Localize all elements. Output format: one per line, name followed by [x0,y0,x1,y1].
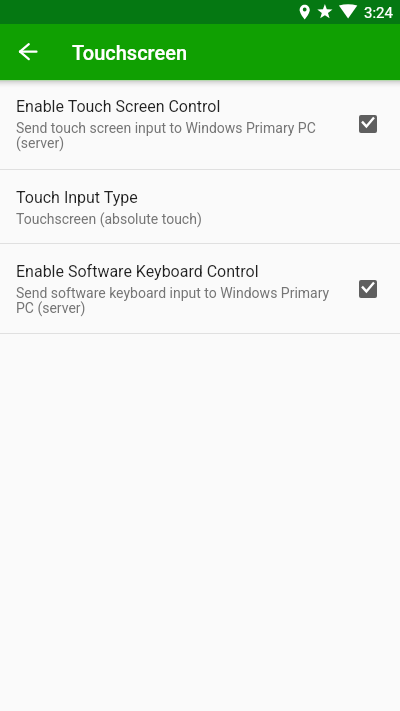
staticText: Touchscreen (absolute touch) [16,211,202,227]
button[interactable]: Navigate up [4,28,52,76]
staticText: Enable Software Keyboard Control [16,262,259,281]
staticText: Touch Input Type [16,188,138,207]
button[interactable]: Enable Software Keyboard Control [0,245,400,334]
staticText: Touchscreen [72,41,188,64]
button[interactable]: Toggle Enable Touch Screen Control [348,104,388,144]
staticText: Send touch screen input to Windows Prima… [16,120,346,151]
staticText: 3:24 [364,4,393,22]
button[interactable]: Toggle Enable Software Keyboard Control [348,269,388,309]
staticText: Enable Touch Screen Control [16,97,221,116]
button[interactable]: Enable Touch Screen Control [0,80,400,170]
staticText: Send software keyboard input to Windows … [16,285,346,316]
button[interactable]: Touch Input Type [0,171,400,244]
